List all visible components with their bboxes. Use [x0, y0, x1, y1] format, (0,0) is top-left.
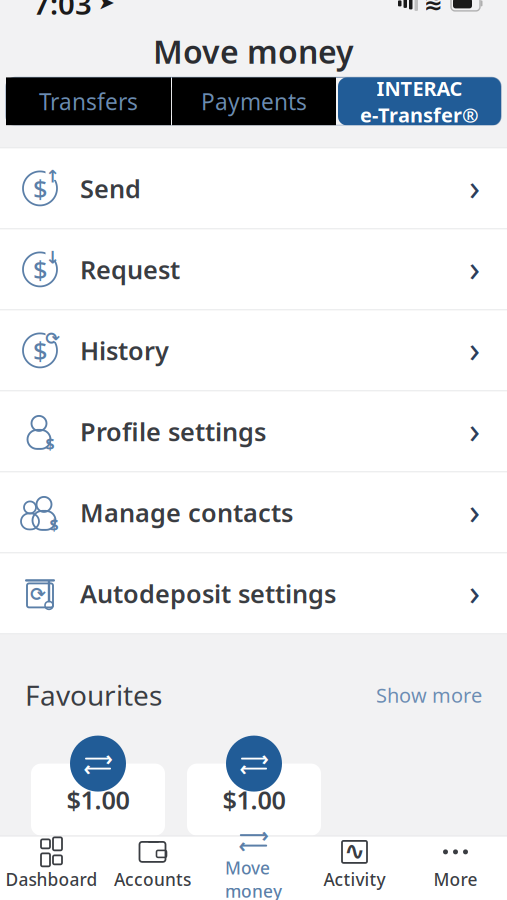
- staticText: ≋: [424, 0, 443, 15]
- staticText: ‹: [239, 754, 246, 781]
- staticText: $: [45, 433, 54, 454]
- button[interactable]: More: [405, 836, 506, 892]
- button[interactable]: Transfers: [6, 77, 171, 125]
- staticText: Payments: [201, 86, 307, 116]
- button[interactable]: $1.00: [187, 732, 321, 836]
- button[interactable]: $: [0, 148, 507, 228]
- staticText: INTERAC: [376, 75, 462, 101]
- staticText: Send: [80, 172, 141, 205]
- staticText: Accounts: [114, 868, 191, 891]
- staticText: $: [33, 334, 47, 367]
- staticText: ›: [105, 744, 112, 771]
- staticText: Activity: [323, 868, 385, 891]
- button[interactable]: $1.00: [31, 732, 165, 836]
- button[interactable]: ›: [203, 836, 304, 892]
- staticText: ‹: [83, 754, 90, 781]
- staticText: Manage contacts: [80, 496, 293, 529]
- staticText: ↓: [45, 248, 60, 267]
- staticText: $: [33, 253, 47, 286]
- staticText: ›: [469, 243, 480, 291]
- staticText: ➤: [98, 0, 115, 14]
- staticText: $1.00: [66, 783, 129, 816]
- staticText: 7:03: [33, 0, 92, 23]
- button[interactable]: ∿: [304, 836, 405, 892]
- button[interactable]: $: [0, 472, 507, 552]
- staticText: Move money: [153, 30, 354, 73]
- staticText: Transfers: [39, 86, 138, 116]
- staticText: ›: [469, 567, 480, 615]
- staticText: Move money: [225, 856, 282, 900]
- button[interactable]: Dashboard: [1, 836, 102, 892]
- staticText: Request: [80, 253, 180, 286]
- staticText: ›: [469, 405, 480, 453]
- staticText: Autodeposit settings: [80, 577, 336, 610]
- button[interactable]: Show more: [376, 682, 482, 708]
- staticText: Favourites: [25, 676, 162, 714]
- staticText: $: [49, 514, 58, 535]
- staticText: ⟳: [30, 584, 46, 605]
- staticText: ›: [469, 324, 480, 372]
- staticText: $: [33, 172, 47, 205]
- staticText: e-Transfer®: [360, 101, 479, 128]
- button[interactable]: $: [0, 391, 507, 471]
- button[interactable]: $: [0, 310, 507, 390]
- staticText: More: [433, 868, 477, 891]
- button[interactable]: Payments: [172, 77, 336, 125]
- staticText: Show more: [376, 682, 482, 708]
- button[interactable]: Accounts: [102, 836, 203, 892]
- staticText: ↑: [45, 167, 60, 186]
- button[interactable]: ⟳: [0, 553, 507, 633]
- staticText: ∿: [344, 836, 365, 865]
- staticText: ⟳: [45, 329, 60, 348]
- staticText: ›: [262, 821, 269, 847]
- staticText: ›: [469, 486, 480, 534]
- staticText: ›: [261, 744, 268, 771]
- staticText: ‹: [238, 831, 245, 858]
- button[interactable]: INTERAC: [338, 77, 501, 125]
- staticText: ›: [469, 162, 480, 210]
- button[interactable]: $: [0, 229, 507, 309]
- staticText: Profile settings: [80, 415, 266, 448]
- staticText: History: [80, 334, 169, 367]
- staticText: $1.00: [222, 783, 285, 816]
- staticText: Dashboard: [5, 868, 97, 891]
